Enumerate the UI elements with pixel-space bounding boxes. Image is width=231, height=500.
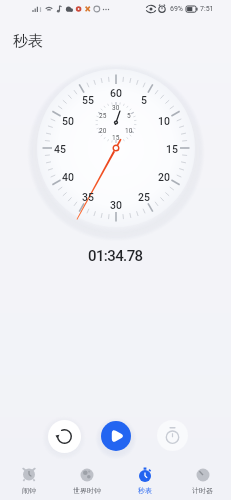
staticText: 30 — [110, 199, 122, 211]
button[interactable]: 闹钟 — [0, 456, 58, 500]
staticText: 20 — [158, 171, 170, 183]
button[interactable] — [157, 420, 188, 451]
button[interactable]: 计时器 — [173, 456, 231, 500]
staticText: 秒表 — [13, 32, 43, 51]
staticText: 40 — [62, 171, 74, 183]
staticText: 10 — [158, 115, 170, 127]
staticText: 35 — [82, 191, 94, 203]
staticText: 30 — [112, 104, 120, 112]
staticText: 5 — [141, 94, 147, 106]
staticText: 5 — [127, 112, 131, 120]
staticText: 45 — [54, 143, 66, 155]
staticText: 7:51 — [200, 5, 214, 13]
staticText: 15 — [166, 143, 178, 155]
staticText: 69% — [170, 5, 183, 13]
button[interactable]: 秒表 — [116, 456, 174, 500]
staticText: 15 — [112, 134, 120, 142]
staticText: 20 — [99, 127, 107, 135]
button[interactable] — [48, 420, 81, 453]
button[interactable]: 世界时钟 — [58, 456, 116, 500]
button[interactable] — [101, 421, 131, 451]
staticText: 计时器 — [192, 486, 213, 495]
staticText: 50 — [62, 115, 74, 127]
staticText: 25 — [99, 112, 107, 120]
staticText: 10 — [125, 127, 133, 135]
staticText: 25 — [138, 191, 150, 203]
staticText: 秒表 — [138, 486, 152, 495]
staticText: 闹钟 — [22, 486, 36, 495]
staticText: 55 — [82, 94, 94, 106]
staticText: 01:34.78 — [88, 247, 143, 265]
staticText: 世界时钟 — [73, 486, 101, 495]
staticText: 60 — [110, 87, 122, 99]
